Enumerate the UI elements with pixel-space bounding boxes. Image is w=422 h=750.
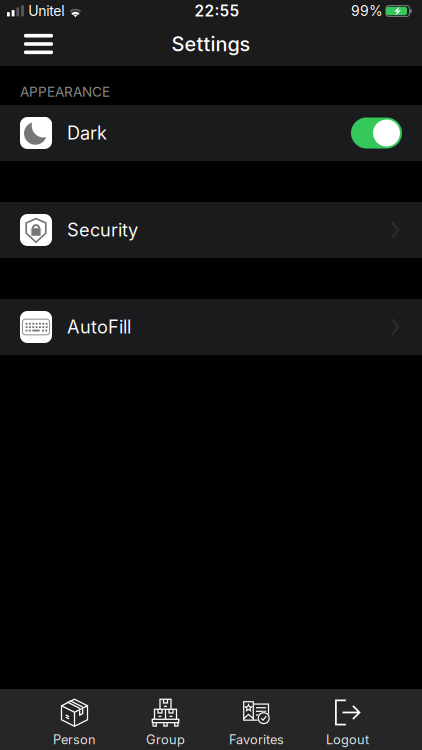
staticText: APPEARANCE: [20, 83, 110, 100]
staticText: Favorites: [229, 732, 284, 747]
staticText: Person: [53, 732, 96, 747]
button[interactable]: Favorites: [211, 689, 302, 750]
staticText: AutoFill: [67, 316, 131, 338]
staticText: Security: [67, 219, 138, 241]
button[interactable]: AutoFill: [0, 299, 422, 355]
staticText: Dark: [67, 122, 107, 144]
button[interactable]: Group: [120, 689, 211, 750]
staticText: Logout: [326, 732, 369, 747]
staticText: Settings: [171, 32, 250, 56]
button[interactable]: Menu: [0, 22, 65, 66]
staticText: 99%: [351, 2, 383, 19]
button[interactable]: Person: [29, 689, 120, 750]
button[interactable]: Logout: [302, 689, 393, 750]
button[interactable]: Dark: [0, 105, 422, 161]
staticText: Unitel: [28, 2, 64, 19]
staticText: Group: [146, 732, 185, 747]
staticText: 22:55: [195, 2, 240, 20]
button[interactable]: Security: [0, 202, 422, 258]
